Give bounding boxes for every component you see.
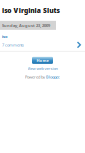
button[interactable]: 7 comments bbox=[0, 41, 85, 49]
staticText: Blogger. bbox=[46, 74, 60, 79]
staticText: 7 comments bbox=[2, 42, 24, 47]
staticText: Home bbox=[36, 58, 48, 63]
staticText: Powered by bbox=[25, 74, 45, 79]
staticText: View web version bbox=[27, 66, 57, 71]
staticText: Sunday, August 23, 2009 bbox=[2, 23, 50, 28]
staticText: iso Virginia Sluts bbox=[2, 6, 60, 15]
button[interactable]: iso bbox=[0, 34, 85, 39]
button[interactable]: View web version bbox=[27, 66, 57, 71]
button[interactable]: Blogger. bbox=[46, 74, 60, 79]
button[interactable]: Home bbox=[32, 57, 53, 64]
staticText: iso bbox=[2, 34, 8, 39]
